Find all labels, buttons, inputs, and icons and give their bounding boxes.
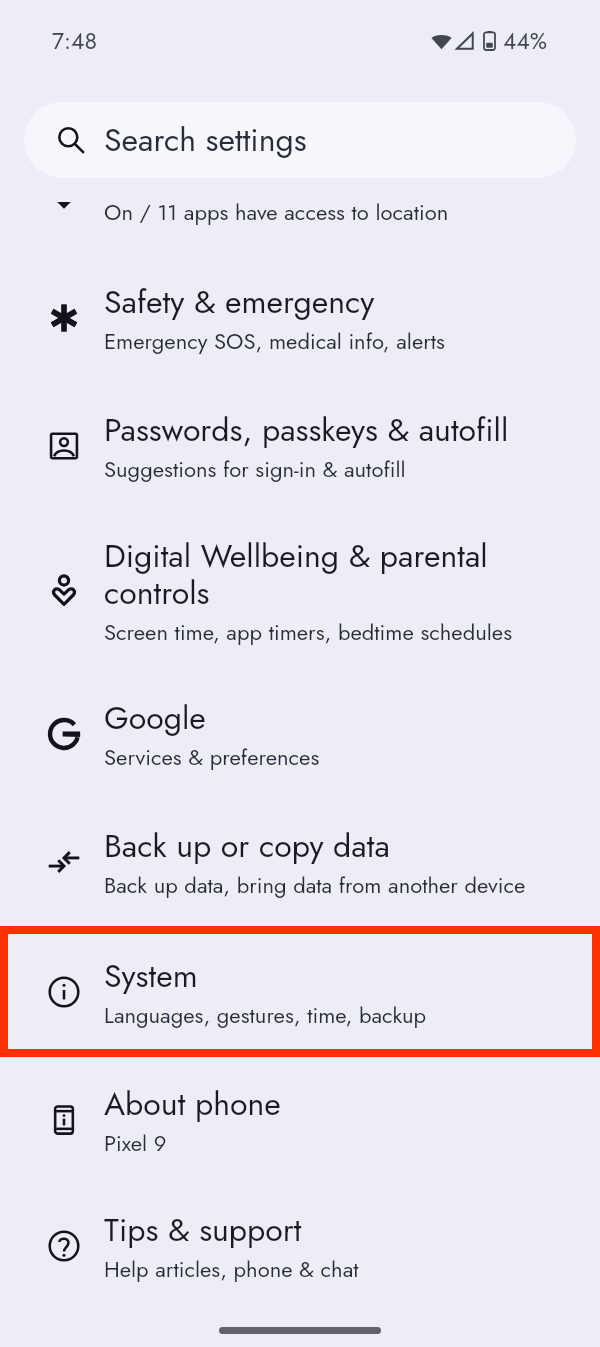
staticText: Suggestions for sign-in & autofill [104,453,574,485]
staticText: Search settings [104,117,307,163]
other: Expand [36,190,92,234]
staticText: About phone [104,1081,574,1127]
staticText: Back up or copy data [104,823,574,869]
staticText: Languages, gestures, time, backup [104,999,574,1031]
other: Back up or copy data [36,834,92,890]
button[interactable]: System [0,926,600,1057]
other: About phone [36,1092,92,1148]
other: Google [36,706,92,762]
button[interactable]: Search settings [24,102,576,178]
button[interactable]: Safety and emergency [0,254,600,382]
staticText: Safety & emergency [104,279,574,325]
button[interactable]: About phone [0,1057,600,1182]
button[interactable]: Tips and support [0,1182,600,1310]
button[interactable]: Digital Wellbeing [0,510,600,670]
staticText: Tips & support [104,1207,574,1253]
staticText: Passwords, passkeys & autofill [104,407,574,453]
staticText: Digital Wellbeing & parental controls [104,533,494,616]
staticText: Emergency SOS, medical info, alerts [104,325,574,357]
other: Safety and emergency [36,290,92,346]
staticText: Google [104,695,574,741]
staticText: Pixel 9 [104,1127,574,1159]
button[interactable]: Passwords passkeys and autofill [0,382,600,510]
staticText: Help articles, phone & chat [104,1253,574,1285]
staticText: Services & preferences [104,741,574,773]
button[interactable]: Back up or copy data [0,798,600,926]
staticText: Back up data, bring data from another de… [104,869,574,901]
button[interactable]: Expand [0,190,600,234]
staticText: Screen time, app timers, bedtime schedul… [104,616,574,648]
staticText: On / 11 apps have access to location [104,196,449,228]
staticText: 7:48 [52,24,97,57]
staticText: System [104,953,574,999]
other: Passwords passkeys and autofill [36,418,92,474]
other: System [36,964,92,1020]
other: Tips and support [36,1218,92,1274]
staticText: 44% [503,24,548,57]
other: Digital Wellbeing [36,562,92,618]
button[interactable]: Google [0,670,600,798]
